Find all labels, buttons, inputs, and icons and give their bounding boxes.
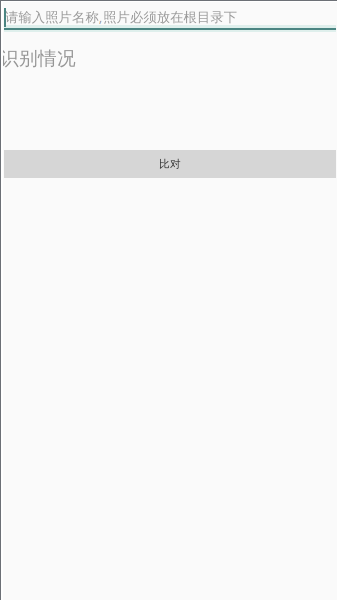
button[interactable]: 请输入照片名称,照片必须放在根目录下 xyxy=(0,0,337,34)
staticText: 识别情况 xyxy=(0,47,76,70)
button[interactable]: 比对 xyxy=(4,150,336,178)
staticText: 请输入照片名称,照片必须放在根目录下 xyxy=(5,8,237,26)
staticText: 比对 xyxy=(159,157,181,170)
